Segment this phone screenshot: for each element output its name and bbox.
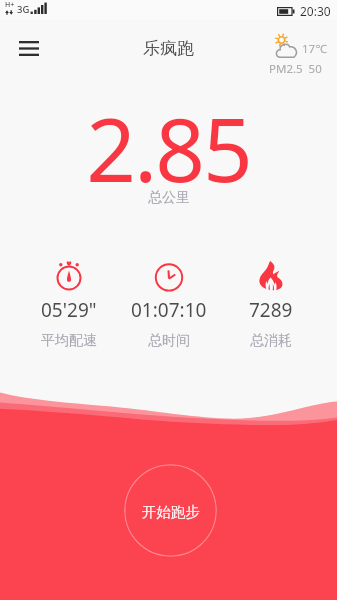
staticText: 2.85 xyxy=(86,89,251,207)
staticText: 总消耗 xyxy=(250,332,292,350)
button[interactable]: 01:07:10 xyxy=(115,258,223,350)
staticText: PM2.5 50 xyxy=(269,61,322,77)
staticText: 01:07:10 xyxy=(131,297,207,323)
button[interactable]: 开始跑步 xyxy=(124,464,217,557)
button[interactable]: 05'29" xyxy=(15,258,123,350)
staticText: 开始跑步 xyxy=(142,503,200,521)
staticText: 3G xyxy=(17,3,30,16)
staticText: 总公里 xyxy=(148,189,190,207)
staticText: 乐疯跑 xyxy=(143,38,194,59)
staticText: 05'29" xyxy=(41,297,97,323)
button[interactable]: Menu xyxy=(9,33,49,63)
button[interactable]: 17℃ xyxy=(264,29,334,77)
staticText: 20:30 xyxy=(300,3,331,19)
staticText: 总时间 xyxy=(148,332,190,350)
staticText: H+ xyxy=(5,0,15,10)
staticText: 17℃ xyxy=(302,41,327,57)
staticText: 平均配速 xyxy=(41,332,97,350)
staticText: 7289 xyxy=(249,297,293,323)
button[interactable]: 7289 xyxy=(217,258,325,350)
